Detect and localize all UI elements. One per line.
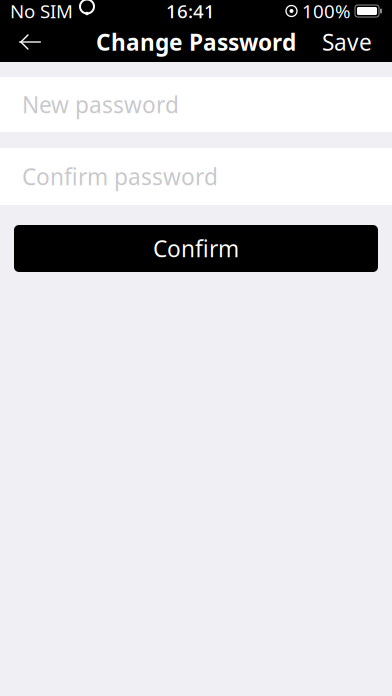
staticText: Confirm <box>153 233 239 263</box>
staticText: Save <box>322 27 372 57</box>
staticText: 16:41 <box>166 0 215 23</box>
button[interactable]: Confirm <box>14 225 378 272</box>
staticText: Change Password <box>96 27 296 57</box>
button[interactable]: New password <box>0 77 392 132</box>
button[interactable]: Confirm password <box>0 148 392 205</box>
button[interactable]: Back <box>8 22 52 62</box>
staticText: Confirm password <box>22 161 218 191</box>
staticText: No SIM <box>10 0 73 23</box>
staticText: 100% <box>302 0 351 23</box>
staticText: New password <box>22 89 179 119</box>
button[interactable]: Save <box>310 22 384 62</box>
